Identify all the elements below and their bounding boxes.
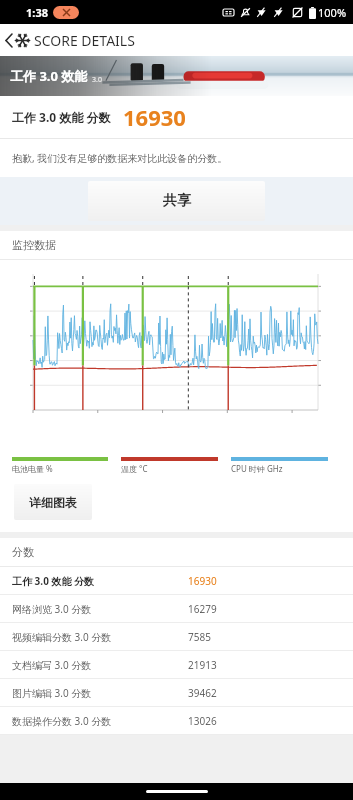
button[interactable]: 工作 3.0 效能 分数 bbox=[0, 567, 353, 595]
button[interactable]: 视频编辑分数 3.0 分数 bbox=[0, 623, 353, 651]
staticText: 文档编写 3.0 分数 bbox=[12, 658, 92, 672]
button[interactable]: 数据操作分数 3.0 分数 bbox=[0, 707, 353, 735]
staticText: 16279 bbox=[188, 602, 217, 616]
staticText: 图片编辑 3.0 分数 bbox=[12, 686, 92, 700]
staticText: 16930 bbox=[188, 574, 217, 588]
staticText: 视频编辑分数 3.0 分数 bbox=[12, 630, 112, 644]
staticText: 详细图表 bbox=[29, 495, 77, 510]
staticText: 21913 bbox=[188, 658, 217, 672]
button[interactable]: 共享 bbox=[88, 181, 265, 221]
staticText: 数据操作分数 3.0 分数 bbox=[12, 714, 112, 728]
staticText: 电池电量 % bbox=[12, 463, 53, 474]
staticText: 16930 bbox=[123, 102, 186, 132]
staticText: 抱歉, 我们没有足够的数据来对比此设备的分数。 bbox=[12, 151, 228, 165]
staticText: CPU 时钟 GHz bbox=[231, 463, 283, 474]
staticText: 监控数据 bbox=[12, 238, 56, 252]
staticText: 分数 bbox=[12, 545, 34, 559]
button[interactable]: 文档编写 3.0 分数 bbox=[0, 651, 353, 679]
button[interactable]: 网络浏览 3.0 分数 bbox=[0, 595, 353, 623]
staticText: 100% bbox=[318, 5, 347, 20]
button[interactable]: 图片编辑 3.0 分数 bbox=[0, 679, 353, 707]
staticText: 7585 bbox=[188, 630, 211, 644]
staticText: 共享 bbox=[163, 192, 191, 210]
staticText: SCORE DETAILS bbox=[34, 31, 135, 50]
staticText: 13026 bbox=[188, 714, 217, 728]
staticText: 工作 3.0 效能 分数 bbox=[12, 109, 111, 125]
staticText: 1:38 bbox=[26, 5, 48, 20]
staticText: 3.0 bbox=[92, 75, 102, 85]
button[interactable]: Back bbox=[0, 24, 34, 56]
button[interactable]: 详细图表 bbox=[14, 484, 92, 520]
staticText: 温度 °C bbox=[121, 463, 148, 474]
staticText: 网络浏览 3.0 分数 bbox=[12, 602, 92, 616]
staticText: 工作 3.0 效能 分数 bbox=[12, 574, 95, 588]
staticText: 39462 bbox=[188, 686, 217, 700]
staticText: 工作 3.0 效能 bbox=[10, 67, 88, 85]
